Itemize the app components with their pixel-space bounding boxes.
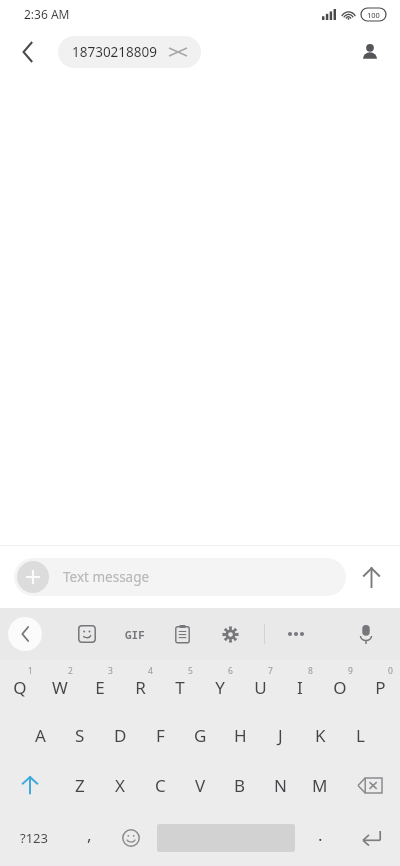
button[interactable]: ?123: [0, 810, 68, 866]
staticText: B: [234, 774, 246, 797]
button[interactable]: Back: [8, 32, 48, 72]
button[interactable]: W: [40, 660, 80, 710]
staticText: S: [75, 724, 85, 747]
staticText: J: [278, 724, 283, 747]
staticText: F: [156, 724, 165, 747]
staticText: Z: [75, 774, 85, 797]
button[interactable]: B: [220, 760, 260, 810]
staticText: T: [175, 676, 185, 699]
staticText: O: [333, 676, 347, 699]
button[interactable]: Z: [60, 760, 100, 810]
staticText: E: [95, 676, 105, 699]
button[interactable]: Shift: [0, 760, 60, 810]
staticText: 2: [68, 665, 73, 677]
button[interactable]: L: [340, 710, 380, 760]
button[interactable]: 18730218809: [58, 36, 201, 68]
button[interactable]: Y: [200, 660, 240, 710]
button[interactable]: E: [80, 660, 120, 710]
button[interactable]: More options: [276, 614, 316, 654]
button[interactable]: P: [360, 660, 400, 710]
button[interactable]: Backspace: [340, 760, 400, 810]
button[interactable]: Close toolbar: [8, 617, 42, 651]
button[interactable]: Settings: [210, 614, 250, 654]
button[interactable]: X: [100, 760, 140, 810]
button[interactable]: N: [260, 760, 300, 810]
staticText: 1: [28, 665, 33, 677]
button[interactable]: O: [320, 660, 360, 710]
staticText: M: [312, 774, 328, 797]
button[interactable]: R: [120, 660, 160, 710]
button[interactable]: D: [100, 710, 140, 760]
button[interactable]: Text message: [14, 558, 346, 596]
staticText: Y: [215, 676, 225, 699]
staticText: P: [375, 676, 386, 699]
staticText: 18730218809: [72, 43, 157, 61]
button[interactable]: F: [140, 710, 180, 760]
staticText: GIF: [125, 627, 145, 642]
button[interactable]: ,: [68, 810, 110, 866]
staticText: H: [234, 724, 247, 747]
staticText: R: [135, 676, 146, 699]
staticText: G: [194, 724, 207, 747]
button[interactable]: T: [160, 660, 200, 710]
button[interactable]: Contact details: [350, 32, 390, 72]
staticText: 0: [388, 665, 393, 677]
button[interactable]: Stickers: [67, 614, 107, 654]
staticText: I: [297, 676, 303, 699]
button[interactable]: Send: [350, 556, 392, 598]
staticText: ?123: [20, 829, 48, 847]
staticText: A: [35, 724, 46, 747]
staticText: Text message: [63, 568, 150, 586]
button[interactable]: U: [240, 660, 280, 710]
staticText: X: [115, 774, 125, 797]
staticText: 6: [228, 665, 233, 677]
staticText: 7: [268, 665, 273, 677]
button[interactable]: S: [60, 710, 100, 760]
button[interactable]: I: [280, 660, 320, 710]
button[interactable]: Clipboard: [162, 614, 202, 654]
button[interactable]: V: [180, 760, 220, 810]
staticText: .: [318, 823, 323, 846]
button[interactable]: .: [299, 810, 341, 866]
staticText: ,: [87, 823, 92, 846]
staticText: V: [195, 774, 206, 797]
staticText: L: [356, 724, 365, 747]
staticText: U: [254, 676, 267, 699]
button[interactable]: G: [180, 710, 220, 760]
button[interactable]: M: [300, 760, 340, 810]
staticText: W: [52, 676, 68, 699]
button[interactable]: Voice input: [346, 614, 386, 654]
staticText: Q: [13, 676, 27, 699]
button[interactable]: J: [260, 710, 300, 760]
button[interactable]: C: [140, 760, 180, 810]
button[interactable]: Q: [0, 660, 40, 710]
button[interactable]: Emoji: [110, 810, 152, 866]
button[interactable]: H: [220, 710, 260, 760]
button[interactable]: Space: [152, 810, 299, 866]
button[interactable]: Enter: [341, 810, 400, 866]
button[interactable]: GIF: [113, 612, 157, 656]
staticText: 9: [348, 665, 353, 677]
staticText: 2:36 AM: [24, 6, 70, 22]
staticText: D: [114, 724, 127, 747]
staticText: C: [155, 774, 166, 797]
staticText: 3: [108, 665, 113, 677]
staticText: 4: [148, 665, 153, 677]
staticText: 100: [367, 10, 380, 20]
staticText: N: [274, 774, 287, 797]
staticText: K: [315, 724, 326, 747]
staticText: 5: [188, 665, 193, 677]
button[interactable]: A: [20, 710, 60, 760]
button[interactable]: K: [300, 710, 340, 760]
staticText: 8: [308, 665, 313, 677]
